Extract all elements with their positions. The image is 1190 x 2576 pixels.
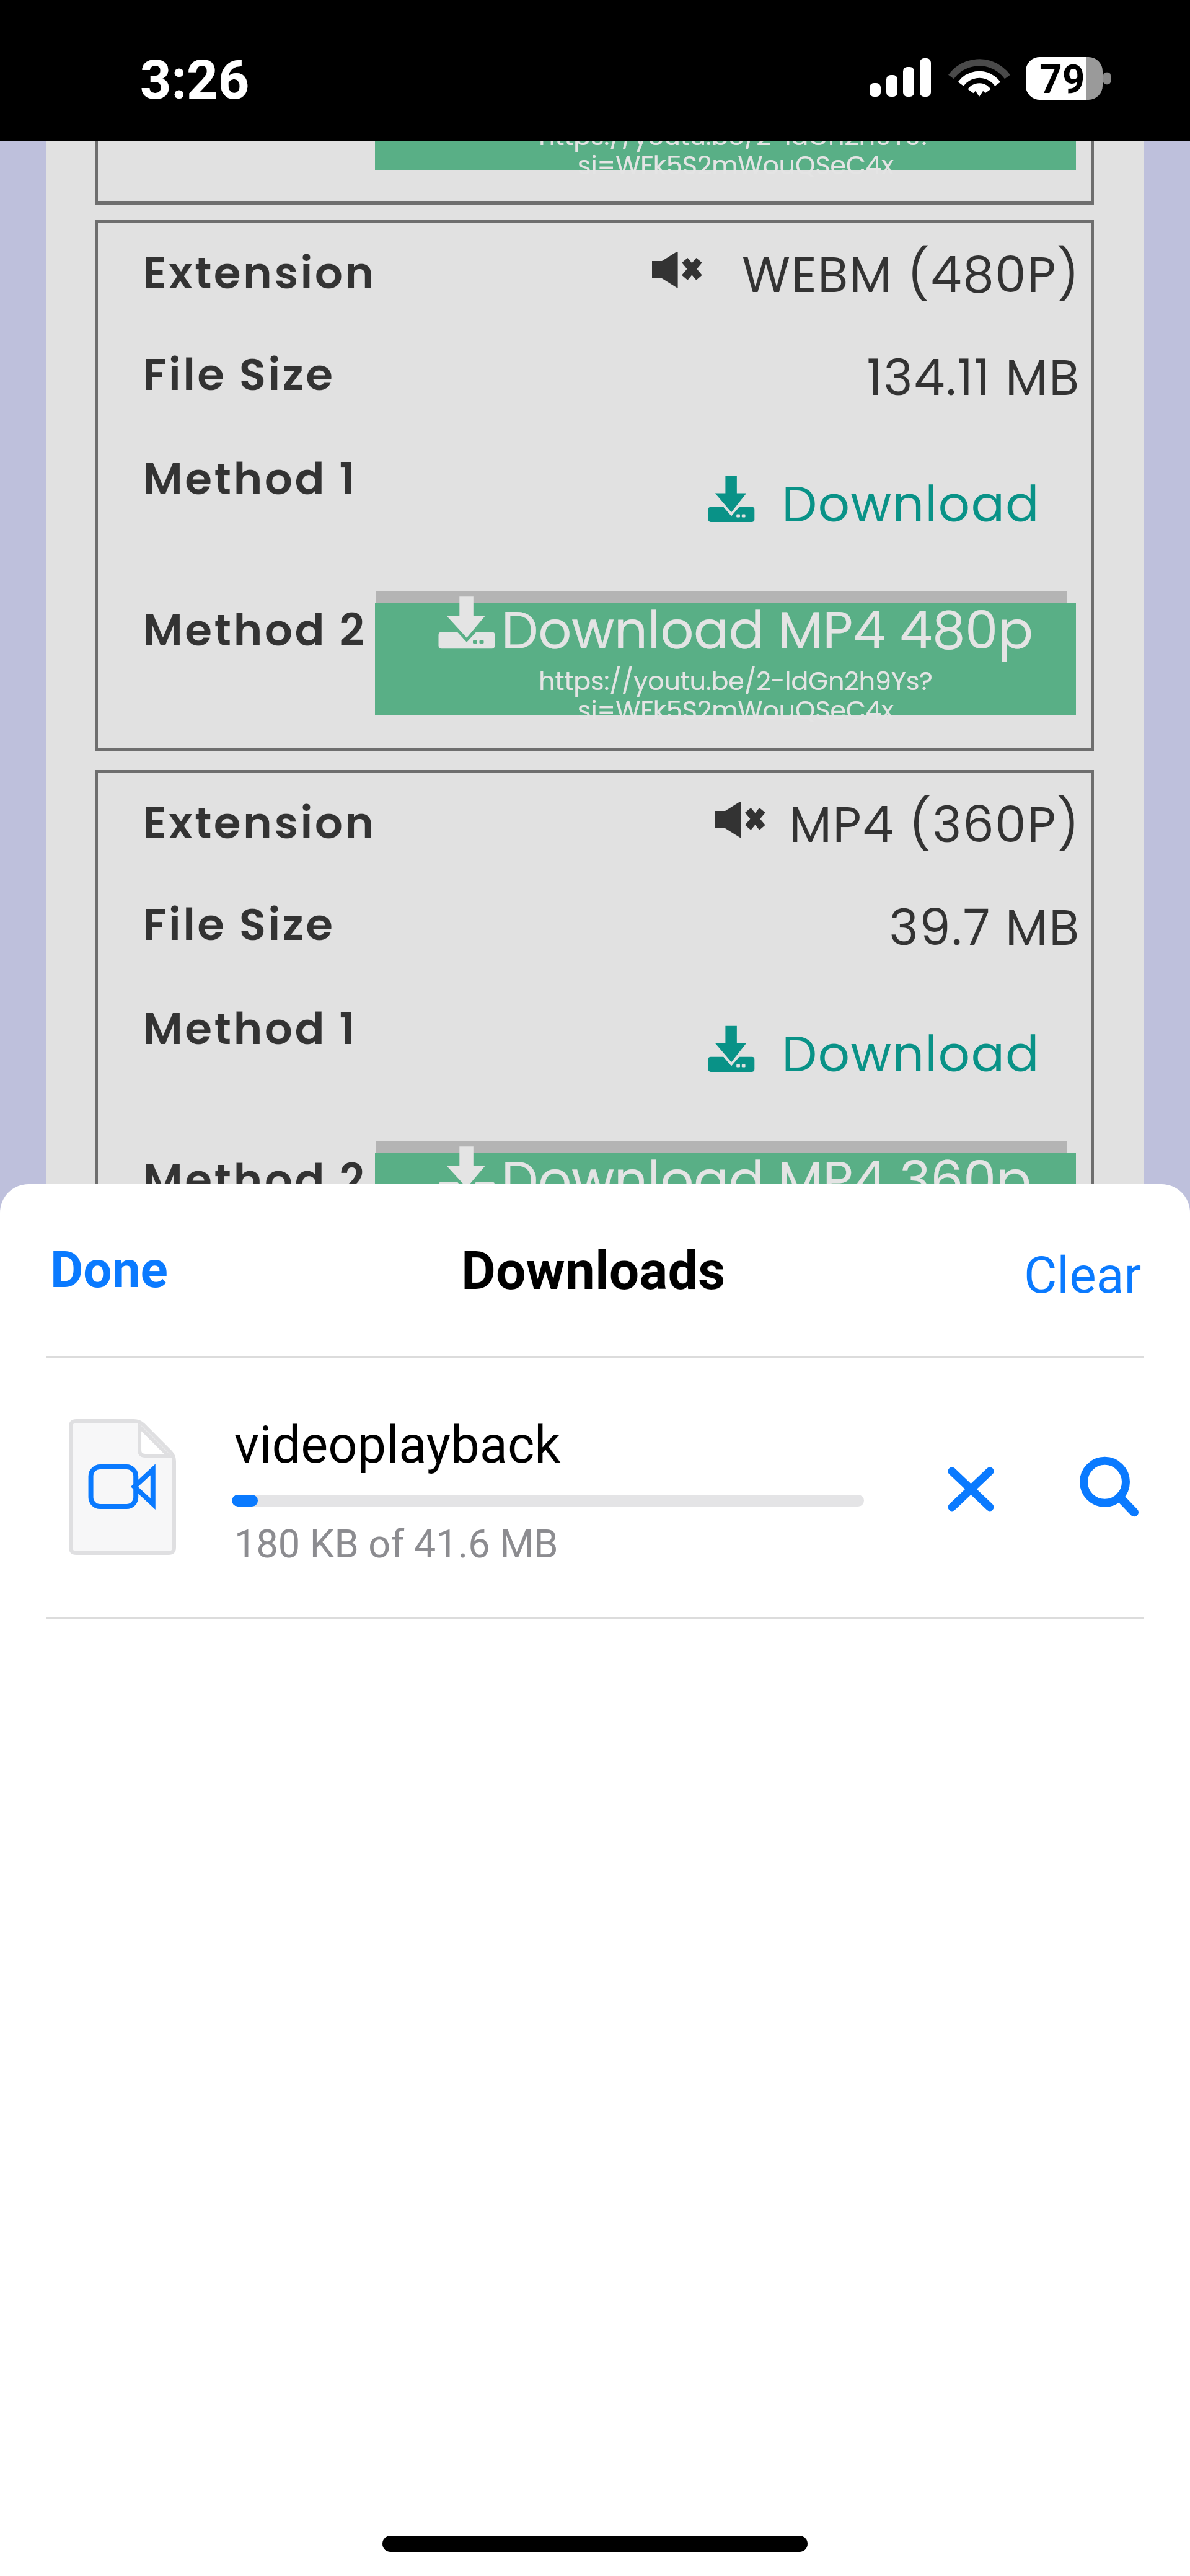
staticText: 180 KB of 41.6 MB xyxy=(234,1521,558,1567)
staticText: Extension xyxy=(143,242,376,303)
staticText: 134.11 MB xyxy=(436,343,1080,412)
button[interactable]: videoplayback xyxy=(0,1358,1190,1617)
staticText: https://youtu.be/2-ldGn2h9Ys? xyxy=(395,663,1077,699)
button[interactable]: Cancel download xyxy=(925,1443,1016,1535)
staticText: Download MP4 360p xyxy=(501,1144,1031,1217)
staticText: File Size xyxy=(143,343,335,405)
staticText: Done xyxy=(50,1240,168,1299)
staticText: Method 2 xyxy=(143,1149,367,1210)
staticText: https://youtu.be/2-ldGn2h9Ys? xyxy=(395,118,1077,154)
staticText: Download MP4 480p xyxy=(501,594,1033,667)
staticText: 39.7 MB xyxy=(436,893,1080,962)
staticText: 3:26 xyxy=(140,48,250,112)
staticText: Download MP4 480p xyxy=(501,49,1033,122)
staticText: videoplayback xyxy=(234,1415,561,1475)
button[interactable]: Download MP4 480p xyxy=(375,591,1076,715)
staticText: si=WFk5S2mWouQSeC4x xyxy=(395,1242,1077,1278)
button[interactable]: Search xyxy=(1057,1435,1162,1540)
staticText: Download xyxy=(436,1019,1040,1089)
staticText: WEBM (480P) xyxy=(436,240,1080,309)
staticText: File Size xyxy=(143,893,335,955)
staticText: Extension xyxy=(143,792,376,853)
staticText: si=WFk5S2mWouQSeC4x xyxy=(395,693,1077,728)
staticText: Clear xyxy=(1024,1246,1142,1305)
button[interactable]: Clear xyxy=(984,1219,1181,1331)
button[interactable]: Download MP4 360p xyxy=(375,1141,1076,1265)
staticText: 79 xyxy=(1039,56,1085,103)
staticText: Method 1 xyxy=(143,448,358,509)
staticText: si=WFk5S2mWouQSeC4x xyxy=(395,148,1077,183)
staticText: Method 1 xyxy=(143,998,358,1059)
staticText: Download xyxy=(436,469,1040,539)
staticText: Method 2 xyxy=(143,599,367,660)
button[interactable]: Done xyxy=(11,1214,208,1326)
staticText: MP4 (360P) xyxy=(436,790,1080,859)
staticText: Downloads xyxy=(461,1239,726,1302)
button[interactable]: Download MP4 480p xyxy=(375,46,1076,170)
